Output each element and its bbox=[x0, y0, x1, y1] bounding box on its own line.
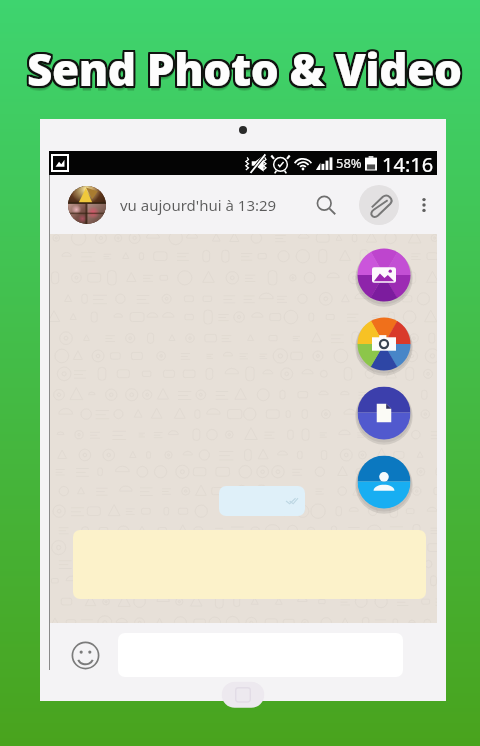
staticText: Send Photo & Video bbox=[29, 38, 464, 94]
staticText: 58% bbox=[336, 154, 362, 172]
button[interactable]: Profile photo bbox=[68, 186, 106, 224]
staticText: Send Photo & Video bbox=[28, 40, 463, 96]
staticText: Send Photo & Video bbox=[25, 37, 460, 93]
staticText: Send Photo & Video bbox=[25, 38, 460, 94]
button[interactable]: Camera bbox=[356, 316, 412, 372]
staticText: Send Photo & Video bbox=[29, 40, 464, 96]
staticText: Send Photo & Video bbox=[27, 38, 462, 94]
staticText: vu aujourd'hui à 13:29 bbox=[120, 195, 277, 215]
staticText: Send Photo & Video bbox=[28, 43, 463, 99]
staticText: Send Photo & Video bbox=[26, 40, 461, 96]
staticText: Send Photo & Video bbox=[26, 41, 461, 97]
button[interactable]: Search bbox=[309, 188, 343, 222]
staticText: Send Photo & Video bbox=[28, 39, 463, 95]
button[interactable]: Contact bbox=[356, 454, 412, 510]
staticText: Send Photo & Video bbox=[28, 42, 463, 98]
staticText: Send Photo & Video bbox=[26, 39, 461, 95]
staticText: Send Photo & Video bbox=[29, 41, 464, 97]
button[interactable]: Emoji bbox=[69, 639, 101, 671]
staticText: Send Photo & Video bbox=[27, 40, 462, 96]
button[interactable]: Document bbox=[356, 385, 412, 441]
staticText: Send Photo & Video bbox=[25, 41, 460, 97]
button[interactable]: Gallery bbox=[356, 247, 412, 303]
staticText: Send Photo & Video bbox=[28, 38, 463, 94]
button[interactable]: Profile photo bbox=[49, 175, 437, 234]
staticText: Send Photo & Video bbox=[29, 39, 464, 95]
button[interactable]: More options bbox=[411, 192, 437, 218]
button[interactable]: Attach bbox=[359, 185, 399, 225]
staticText: Send Photo & Video bbox=[28, 44, 463, 100]
staticText: Send Photo & Video bbox=[25, 40, 460, 96]
staticText: Send Photo & Video bbox=[27, 41, 462, 97]
staticText: Send Photo & Video bbox=[25, 39, 460, 95]
staticText: Send Photo & Video bbox=[26, 38, 461, 94]
staticText: Send Photo & Video bbox=[27, 39, 462, 95]
staticText: Send Photo & Video bbox=[28, 37, 463, 93]
staticText: Send Photo & Video bbox=[27, 37, 462, 93]
staticText: Send Photo & Video bbox=[28, 41, 463, 97]
staticText: Send Photo & Video bbox=[26, 37, 461, 93]
staticText: 14:16 bbox=[382, 151, 434, 175]
staticText: Send Photo & Video bbox=[29, 37, 464, 93]
